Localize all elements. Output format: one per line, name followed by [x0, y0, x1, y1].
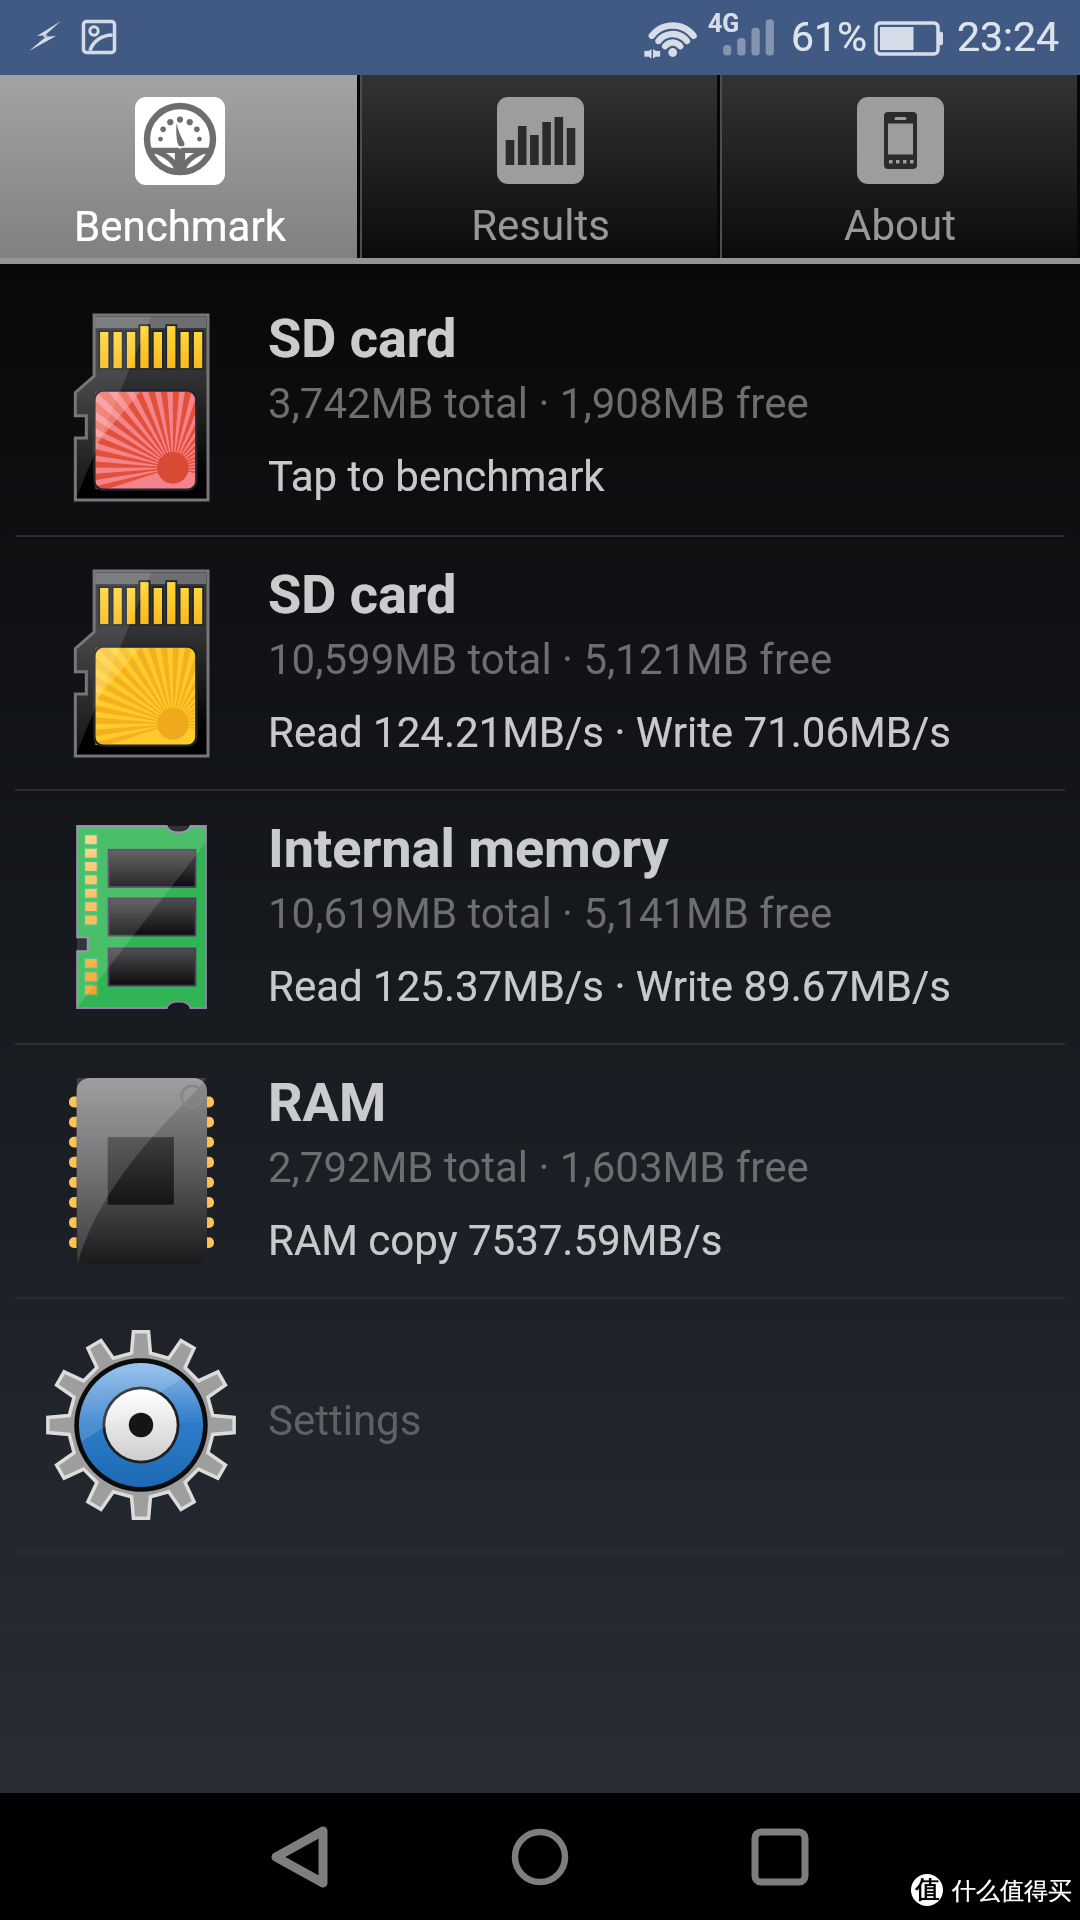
button[interactable]: Results — [360, 75, 720, 258]
staticText: 值 — [915, 1875, 939, 1905]
staticText: RAM — [268, 1071, 387, 1134]
button[interactable]: Benchmark — [0, 75, 360, 258]
staticText: Internal memory — [268, 817, 669, 880]
staticText: 23:24 — [957, 13, 1060, 61]
button[interactable]: About — [720, 75, 1080, 258]
staticText: Settings — [268, 1396, 422, 1445]
button[interactable]: Recent apps — [726, 1803, 834, 1911]
staticText: 10,619MB total · 5,141MB free — [268, 889, 833, 938]
staticText: Results — [471, 201, 610, 250]
staticText: SD card — [268, 307, 457, 370]
staticText: About — [844, 201, 956, 250]
button[interactable]: Back — [246, 1803, 354, 1911]
staticText: 4G — [708, 9, 740, 38]
staticText: Benchmark — [74, 202, 286, 251]
button[interactable]: SD card — [0, 281, 1080, 535]
staticText: 61% — [791, 13, 868, 61]
button[interactable]: RAM — [0, 1045, 1080, 1297]
button[interactable]: Settings — [0, 1299, 1080, 1551]
staticText: 2,792MB total · 1,603MB free — [268, 1143, 809, 1192]
button[interactable]: Home — [486, 1803, 594, 1911]
staticText: Tap to benchmark — [268, 452, 605, 501]
staticText: 3,742MB total · 1,908MB free — [268, 379, 809, 428]
staticText: Read 124.21MB/s · Write 71.06MB/s — [268, 708, 951, 757]
button[interactable]: Internal memory — [0, 791, 1080, 1043]
staticText: 10,599MB total · 5,121MB free — [268, 635, 833, 684]
staticText: Read 125.37MB/s · Write 89.67MB/s — [268, 962, 951, 1011]
staticText: RAM copy 7537.59MB/s — [268, 1216, 723, 1265]
button[interactable]: SD card — [0, 537, 1080, 789]
staticText: 什么值得买 — [952, 1876, 1072, 1906]
staticText: SD card — [268, 563, 457, 626]
